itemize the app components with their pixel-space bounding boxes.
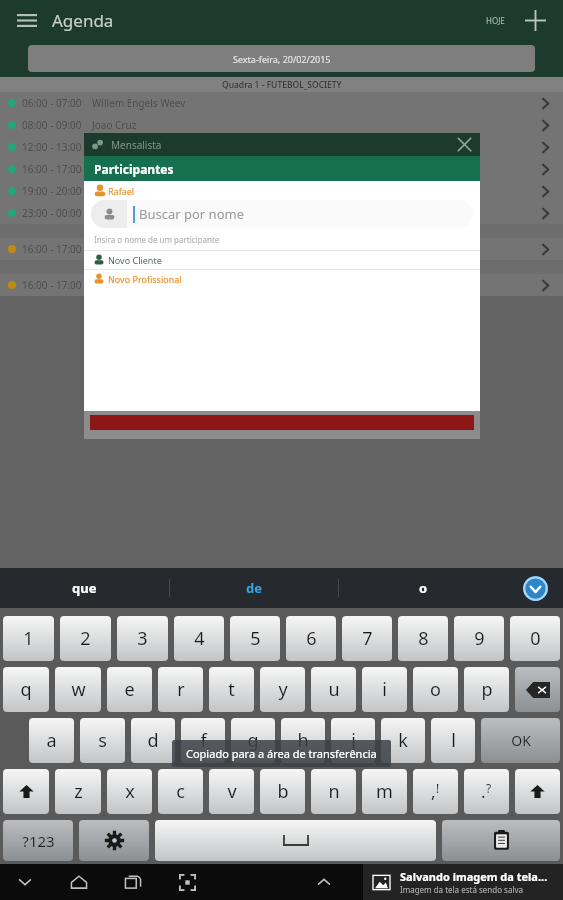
button[interactable]: s — [80, 718, 125, 763]
button[interactable]: Aplicativos recentes — [118, 867, 148, 897]
button[interactable]: Buscar por nome — [91, 200, 473, 228]
button[interactable]: 12:00 - 13:00 — [0, 136, 563, 158]
button[interactable]: Menu — [12, 5, 42, 35]
button[interactable]: Configurações do teclado — [79, 820, 149, 861]
button[interactable]: j — [331, 718, 375, 763]
button[interactable]: n — [311, 769, 356, 814]
staticText: Imagem da tela está sendo salva — [400, 884, 524, 895]
staticText: o — [419, 579, 428, 597]
button[interactable]: 0 — [510, 616, 560, 661]
button[interactable]: . — [464, 769, 509, 814]
staticText: , — [431, 780, 436, 803]
button[interactable]: g — [231, 718, 275, 763]
staticText: 08:00 - 09:00 — [22, 118, 82, 132]
staticText: a — [46, 728, 57, 753]
staticText: Sexta-feira, 20/02/2015 — [233, 53, 331, 65]
button[interactable]: Fechar — [452, 133, 476, 156]
staticText: Mensalista — [111, 138, 162, 152]
button[interactable]: m — [362, 769, 407, 814]
button[interactable]: Voltar — [10, 867, 40, 897]
button[interactable]: t — [209, 667, 254, 712]
button[interactable]: e — [107, 667, 152, 712]
button[interactable]: k — [381, 718, 425, 763]
button[interactable]: 19:00 - 20:00 — [0, 180, 563, 202]
button[interactable]: Apagar — [515, 667, 560, 712]
staticText: u — [328, 677, 340, 702]
button[interactable]: Mais opções — [309, 867, 339, 897]
button[interactable]: Rafael — [84, 181, 480, 200]
button[interactable]: 23:00 - 00:00 — [0, 202, 563, 224]
button[interactable]: 16:00 - 17:00 — [0, 158, 563, 180]
button[interactable]: a — [29, 718, 74, 763]
button[interactable]: o — [413, 667, 458, 712]
button[interactable]: q — [3, 667, 49, 712]
button[interactable]: que — [0, 568, 169, 608]
button[interactable]: Adicionar — [519, 4, 551, 36]
button[interactable]: Área de transferência — [442, 820, 560, 861]
button[interactable]: p — [464, 667, 509, 712]
staticText: 8 — [418, 626, 429, 651]
button[interactable]: Expandir sugestões — [507, 568, 563, 608]
staticText: Copiado para a área de transferência — [186, 746, 377, 761]
button[interactable]: w — [55, 667, 101, 712]
staticText: ! — [436, 780, 440, 796]
button[interactable]: 6 — [286, 616, 336, 661]
staticText: w — [71, 677, 86, 702]
button[interactable]: 5 — [230, 616, 280, 661]
button[interactable]: Shift — [515, 769, 560, 814]
staticText: q — [20, 677, 32, 702]
button[interactable]: 16:00 - 17:00 — [0, 274, 563, 296]
button[interactable] — [155, 820, 436, 861]
button[interactable]: u — [311, 667, 356, 712]
button[interactable]: HOJE — [486, 4, 505, 36]
button[interactable]: Novo Profissional — [84, 270, 480, 288]
staticText: Buscar por nome — [139, 205, 244, 223]
button[interactable]: Início — [64, 867, 94, 897]
button[interactable]: ?123 — [3, 820, 73, 861]
button[interactable]: de — [170, 568, 338, 608]
button[interactable]: OK — [481, 718, 560, 763]
button[interactable]: r — [158, 667, 203, 712]
button[interactable]: Sexta-feira, 20/02/2015 — [28, 45, 535, 72]
staticText: Novo Cliente — [108, 254, 162, 266]
button[interactable]: x — [107, 769, 152, 814]
staticText: r — [177, 677, 185, 702]
staticText: j — [351, 728, 356, 753]
button[interactable]: l — [431, 718, 475, 763]
button[interactable]: Captura de tela — [172, 867, 202, 897]
button[interactable]: , — [413, 769, 458, 814]
button[interactable]: c — [158, 769, 203, 814]
staticText: 23:00 - 00:00 — [22, 206, 82, 220]
button[interactable]: b — [260, 769, 305, 814]
button[interactable]: Shift — [3, 769, 49, 814]
button[interactable]: 2 — [60, 616, 111, 661]
button[interactable]: i — [362, 667, 407, 712]
staticText: k — [398, 728, 408, 753]
button[interactable]: 1 — [3, 616, 54, 661]
button[interactable]: 06:00 - 07:00 — [0, 92, 563, 114]
staticText: Insira o nome de um participante — [94, 234, 220, 245]
button[interactable]: Salvando imagem da tela... — [363, 864, 563, 900]
button[interactable]: 8 — [398, 616, 448, 661]
button[interactable]: z — [55, 769, 101, 814]
staticText: Joao Cruz — [92, 118, 137, 132]
button[interactable]: Novo Cliente — [84, 251, 480, 269]
staticText: 3 — [137, 626, 148, 651]
button[interactable]: y — [260, 667, 305, 712]
staticText: x — [125, 779, 135, 804]
staticText: g — [247, 728, 259, 753]
button[interactable]: 16:00 - 17:00 — [0, 238, 563, 260]
button[interactable]: 3 — [117, 616, 168, 661]
staticText: 16:00 - 17:00 — [22, 278, 82, 292]
button[interactable]: f — [181, 718, 225, 763]
button[interactable]: h — [281, 718, 325, 763]
staticText: 7 — [362, 626, 373, 651]
button[interactable]: 08:00 - 09:00 — [0, 114, 563, 136]
button[interactable]: 9 — [454, 616, 504, 661]
button[interactable]: d — [131, 718, 175, 763]
button[interactable]: o — [339, 568, 507, 608]
button[interactable]: v — [209, 769, 254, 814]
button[interactable]: 7 — [342, 616, 392, 661]
button[interactable]: 4 — [174, 616, 224, 661]
